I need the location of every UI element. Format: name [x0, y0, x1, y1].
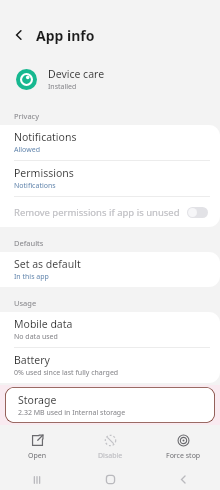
button[interactable]: Permissions [0, 161, 220, 196]
button[interactable]: Storage [5, 387, 215, 423]
button[interactable]: Mobile data [0, 312, 220, 347]
button[interactable]: Open [0, 425, 74, 469]
staticText: Battery [14, 353, 50, 367]
button[interactable]: Back [147, 469, 220, 490]
staticText: Privacy [14, 111, 40, 121]
staticText: 2.32 MB used in Internal storage [18, 408, 126, 418]
staticText: Mobile data [14, 317, 73, 331]
staticText: Device care [48, 67, 105, 81]
staticText: 0% used since last fully charged [14, 368, 119, 378]
button[interactable]: Recents [0, 469, 74, 490]
staticText: Notifications [14, 181, 56, 191]
button[interactable]: Back [8, 24, 30, 46]
staticText: Set as default [14, 257, 81, 271]
staticText: Notifications [14, 130, 77, 144]
button[interactable]: Set as default [0, 252, 220, 287]
staticText: In this app [14, 272, 49, 282]
staticText: Remove permissions if app is unused [14, 206, 180, 219]
staticText: Permissions [14, 166, 74, 180]
button[interactable]: Battery [0, 348, 220, 383]
button[interactable]: Remove permissions if app is unused [0, 197, 220, 227]
staticText: Installed [48, 82, 77, 92]
staticText: Storage [18, 393, 57, 407]
staticText: No data used [14, 332, 58, 342]
staticText: Force stop [166, 451, 201, 461]
staticText: App info [36, 26, 95, 45]
button[interactable]: Disable [74, 425, 147, 469]
button[interactable]: Home [74, 469, 147, 490]
button[interactable]: Device care [0, 62, 220, 96]
staticText: Defaults [14, 238, 44, 248]
button[interactable]: Remove permissions toggle [187, 207, 208, 218]
staticText: Usage [14, 298, 37, 308]
button[interactable]: Force stop [147, 425, 220, 469]
staticText: Open [28, 451, 47, 461]
staticText: Disable [98, 451, 123, 461]
staticText: Allowed [14, 145, 40, 155]
button[interactable]: Notifications [0, 125, 220, 160]
